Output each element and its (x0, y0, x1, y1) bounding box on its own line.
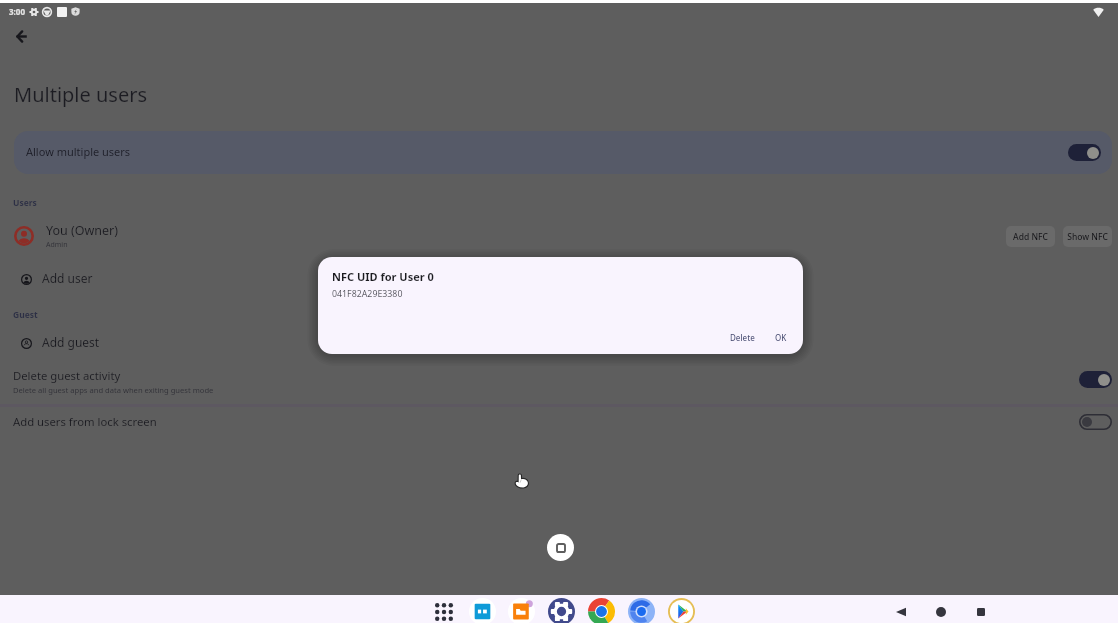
staticText: You (Owner) (46, 222, 119, 239)
button[interactable]: Delete guest activity (0, 362, 1118, 396)
staticText: Delete all guest apps and data when exit… (13, 385, 214, 395)
staticText: Add NFC (1013, 231, 1048, 243)
button[interactable]: Back (8, 23, 34, 49)
button[interactable]: Settings (547, 597, 575, 623)
staticText: 041F82A29E3380 (332, 288, 403, 300)
staticText: Multiple users (14, 81, 148, 108)
button[interactable]: Delete guest activity (1079, 371, 1112, 388)
button[interactable]: Play Store (667, 597, 695, 623)
button[interactable]: You (Owner) (0, 215, 1118, 257)
button[interactable]: Add guest (0, 329, 1118, 357)
button[interactable]: Home (929, 600, 953, 623)
staticText: Show NFC (1067, 231, 1108, 243)
button[interactable]: Back (889, 600, 913, 623)
button[interactable]: Show NFC (1063, 226, 1112, 247)
button[interactable]: Stop (547, 534, 574, 561)
staticText: Add user (42, 270, 93, 286)
button[interactable]: Add users from lock screen (1079, 414, 1112, 430)
button[interactable]: Allow multiple users (1068, 144, 1101, 161)
button[interactable]: Media (468, 597, 496, 623)
staticText: Allow multiple users (26, 144, 131, 159)
button[interactable]: All apps (429, 597, 457, 623)
staticText: Delete (730, 332, 755, 343)
staticText: Delete guest activity (13, 368, 121, 383)
button[interactable]: Recents (969, 600, 993, 623)
staticText: Users (13, 197, 37, 209)
staticText: NFC UID for User 0 (332, 269, 434, 284)
button[interactable]: Add NFC (1006, 226, 1055, 247)
button[interactable]: Chromium (627, 597, 655, 623)
button[interactable]: Add users from lock screen (0, 407, 1118, 436)
staticText: OK (775, 332, 787, 343)
button[interactable]: Delete (726, 329, 759, 346)
button[interactable]: Files (507, 597, 535, 623)
staticText: Add guest (42, 334, 100, 350)
staticText: Add users from lock screen (13, 414, 157, 429)
button[interactable]: Add user (0, 265, 1118, 293)
button[interactable]: Allow multiple users (14, 131, 1112, 174)
staticText: Admin (46, 240, 68, 250)
button[interactable]: Chrome (587, 597, 615, 623)
staticText: 3:00 (9, 6, 25, 17)
button[interactable]: OK (771, 329, 791, 346)
staticText: Guest (13, 309, 38, 321)
